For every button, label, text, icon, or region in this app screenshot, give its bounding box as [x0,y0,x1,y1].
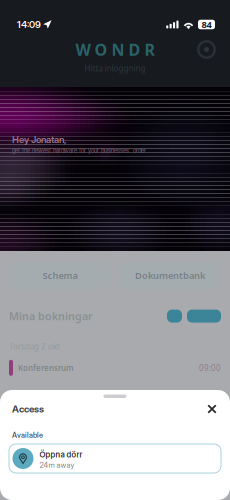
staticText: W O N D R [75,39,154,60]
staticText: Schema [42,269,77,282]
button[interactable]: Close [202,402,222,416]
staticText: Hitta inloggning [84,63,145,74]
staticText: Hey Jonatan, [12,134,66,145]
staticText: Available [12,430,43,439]
staticText: get the newest hardware for your busines… [12,147,146,154]
staticText: 24m away [39,460,74,469]
staticText: Mina bokningar [9,309,93,323]
staticText: Torsdag 2 okt [9,341,60,352]
staticText: 09:00 [199,362,221,373]
staticText: 84 [201,18,211,31]
staticText: Access [12,403,44,415]
staticText: Öppna dörr [39,450,82,459]
staticText: Dokumentbank [135,269,205,282]
button[interactable]: Öppna dörr [9,444,221,473]
staticText: 14:09 [17,19,41,30]
staticText: Konferensrum [18,362,74,373]
